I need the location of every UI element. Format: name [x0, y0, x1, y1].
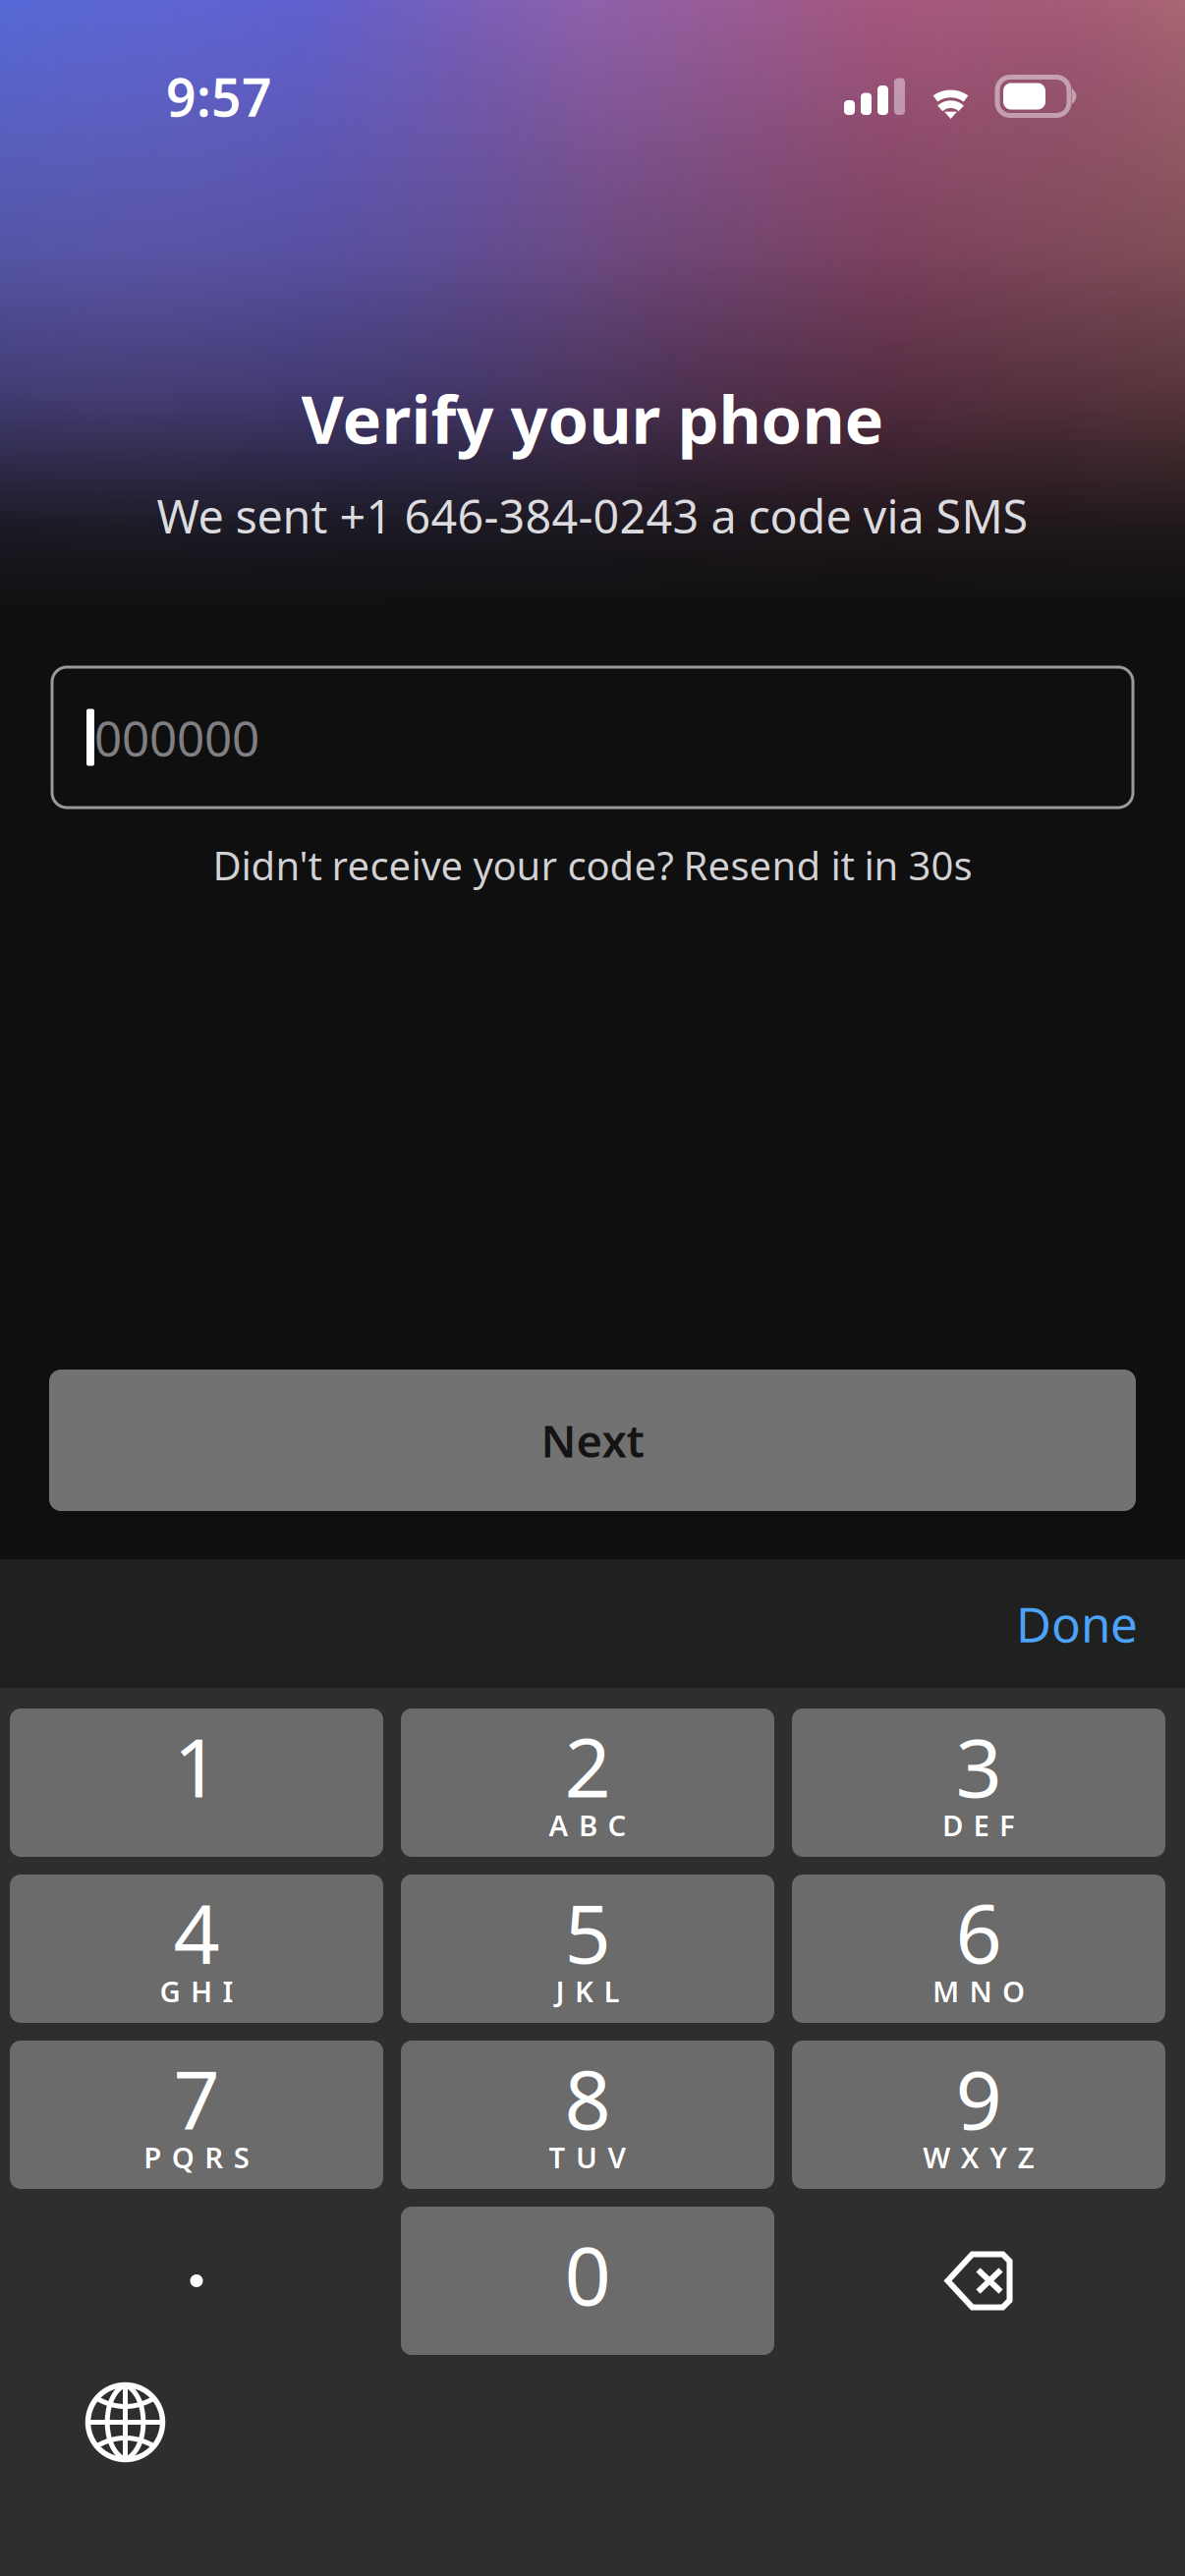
staticText: G: [160, 1972, 180, 2010]
staticText: 3: [956, 1712, 1002, 1820]
staticText: J: [556, 1972, 564, 2010]
staticText: V: [608, 2138, 626, 2176]
staticText: P: [144, 2138, 161, 2176]
button[interactable]: 1: [10, 1708, 383, 1857]
staticText: I: [223, 1972, 233, 2010]
button[interactable]: 000000: [52, 667, 1133, 808]
staticText: 7: [173, 2044, 220, 2152]
button[interactable]: 9: [792, 2041, 1165, 2189]
staticText: D: [942, 1806, 963, 1844]
staticText: B: [579, 1806, 597, 1844]
button[interactable]: 6: [792, 1875, 1165, 2023]
staticText: T: [549, 2138, 565, 2176]
staticText: Y: [990, 2138, 1007, 2176]
button[interactable]: 3: [792, 1708, 1165, 1857]
staticText: 6: [956, 1878, 1002, 1986]
staticText: 9: [956, 2044, 1002, 2152]
staticText: Verify your phone: [301, 375, 884, 462]
staticText: C: [608, 1806, 626, 1844]
button[interactable]: 2: [401, 1708, 774, 1857]
staticText: 000000: [94, 705, 259, 769]
staticText: Z: [1018, 2138, 1034, 2176]
staticText: Done: [1016, 1591, 1138, 1656]
button[interactable]: Delete: [792, 2207, 1165, 2355]
staticText: K: [575, 1972, 593, 2010]
staticText: 2: [564, 1712, 611, 1820]
staticText: X: [961, 2138, 979, 2176]
button[interactable]: 0: [401, 2207, 774, 2355]
staticText: 1: [173, 1712, 220, 1820]
staticText: F: [999, 1806, 1015, 1844]
staticText: A: [549, 1806, 568, 1844]
button[interactable]: 8: [401, 2041, 774, 2189]
button[interactable]: 7: [10, 2041, 383, 2189]
button[interactable]: Period: [10, 2207, 383, 2355]
staticText: W: [923, 2138, 950, 2176]
button[interactable]: 5: [401, 1875, 774, 2023]
staticText: Next: [541, 1411, 644, 1470]
staticText: 4: [173, 1878, 220, 1986]
staticText: 9:57: [166, 62, 272, 131]
staticText: U: [576, 2138, 597, 2176]
button[interactable]: Next: [49, 1370, 1136, 1511]
staticText: 0: [564, 2220, 611, 2328]
staticText: M: [932, 1972, 959, 2010]
button[interactable]: 4: [10, 1875, 383, 2023]
staticText: 5: [564, 1878, 611, 1986]
button[interactable]: Next keyboard: [85, 2382, 165, 2462]
staticText: L: [604, 1972, 620, 2010]
staticText: Q: [172, 2138, 194, 2176]
staticText: 8: [564, 2044, 611, 2152]
staticText: S: [234, 2138, 249, 2176]
staticText: O: [1002, 1972, 1025, 2010]
staticText: N: [969, 1972, 992, 2010]
staticText: We sent +1 646-384-0243 a code via SMS: [157, 485, 1028, 546]
staticText: E: [973, 1806, 989, 1844]
staticText: H: [191, 1972, 212, 2010]
button[interactable]: Done: [969, 1566, 1185, 1681]
staticText: Didn't receive your code? Resend it in 3…: [213, 839, 972, 891]
staticText: R: [205, 2138, 223, 2176]
